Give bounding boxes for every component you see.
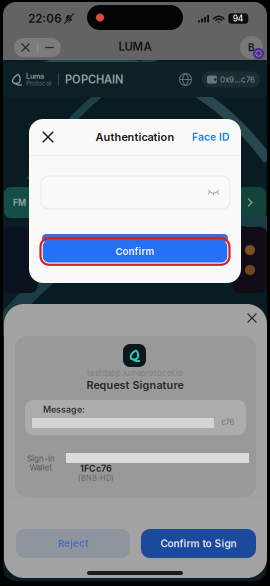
button[interactable]: Close [241,307,263,329]
staticText: Sign-In [27,454,55,463]
staticText: 22:06 [28,12,61,25]
button[interactable]: Account [239,35,264,60]
staticText: Confirm to Sign [160,537,236,550]
staticText: Face ID [192,131,230,143]
staticText: Wallet [29,463,52,472]
staticText: LUMA [118,40,151,53]
staticText: testdapp.lumaprotocol.io [87,368,183,378]
button[interactable]: Confirm [39,237,230,265]
staticText: Reject [58,538,88,549]
button[interactable]: Confirm to Sign [141,529,256,558]
staticText: 94 [233,13,244,23]
button[interactable]: Face ID [182,124,230,150]
staticText: Protocol [26,79,52,87]
staticText: 1FCc76 [80,463,112,474]
staticText: Message: [43,404,85,415]
staticText: FM [13,197,26,208]
staticText: c76 [221,417,234,427]
staticText: Luma [26,72,44,80]
staticText: POPCHAIN [65,73,123,86]
staticText: Confirm [115,246,154,257]
button[interactable]: Close [35,124,61,150]
staticText: Authentication [95,130,174,144]
staticText: B [248,41,255,54]
staticText: 0x9…c76 [220,75,255,84]
staticText: (BNB-HD) [78,473,114,482]
button[interactable]: Reject [16,529,130,558]
button[interactable]: Close mini app [14,38,61,57]
staticText: Request Signature [86,378,183,392]
